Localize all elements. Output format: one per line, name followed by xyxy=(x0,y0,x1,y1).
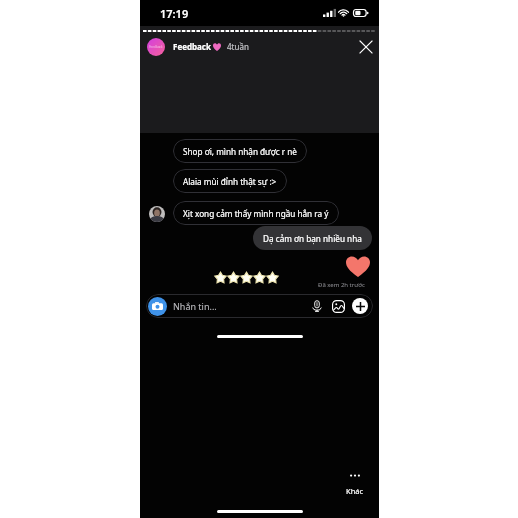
staticText: 17:19 xyxy=(160,6,189,21)
staticText: Dạ cảm ơn bạn nhiều nha xyxy=(263,233,362,244)
button[interactable]: Feedback xyxy=(147,38,165,56)
button[interactable]: Close xyxy=(356,37,376,56)
button[interactable]: Alaia mùi đỉnh thật sự :> xyxy=(173,169,287,193)
button[interactable]: Dạ cảm ơn bạn nhiều nha xyxy=(253,226,372,250)
staticText: 4tuần xyxy=(227,41,249,52)
staticText: Đã xem 2h trước xyxy=(318,281,365,289)
button[interactable]: Photo xyxy=(331,299,345,313)
staticText: Feedback xyxy=(149,45,163,49)
button[interactable]: Voice message xyxy=(310,299,324,313)
button[interactable]: Add xyxy=(352,298,368,314)
button[interactable]: Camera xyxy=(148,297,167,316)
staticText: Nhắn tin... xyxy=(173,300,217,312)
staticText: Xịt xong cảm thấy mình ngầu hẳn ra ý xyxy=(183,208,329,219)
staticText: Khác xyxy=(346,486,364,496)
staticText: Feedback xyxy=(173,41,211,52)
button[interactable]: Shop ơi, mình nhận được r nè xyxy=(173,139,307,163)
staticText: Shop ơi, mình nhận được r nè xyxy=(183,146,297,157)
staticText: Alaia mùi đỉnh thật sự :> xyxy=(183,176,277,187)
button[interactable]: Xịt xong cảm thấy mình ngầu hẳn ra ý xyxy=(173,201,339,225)
button[interactable] xyxy=(149,206,165,222)
